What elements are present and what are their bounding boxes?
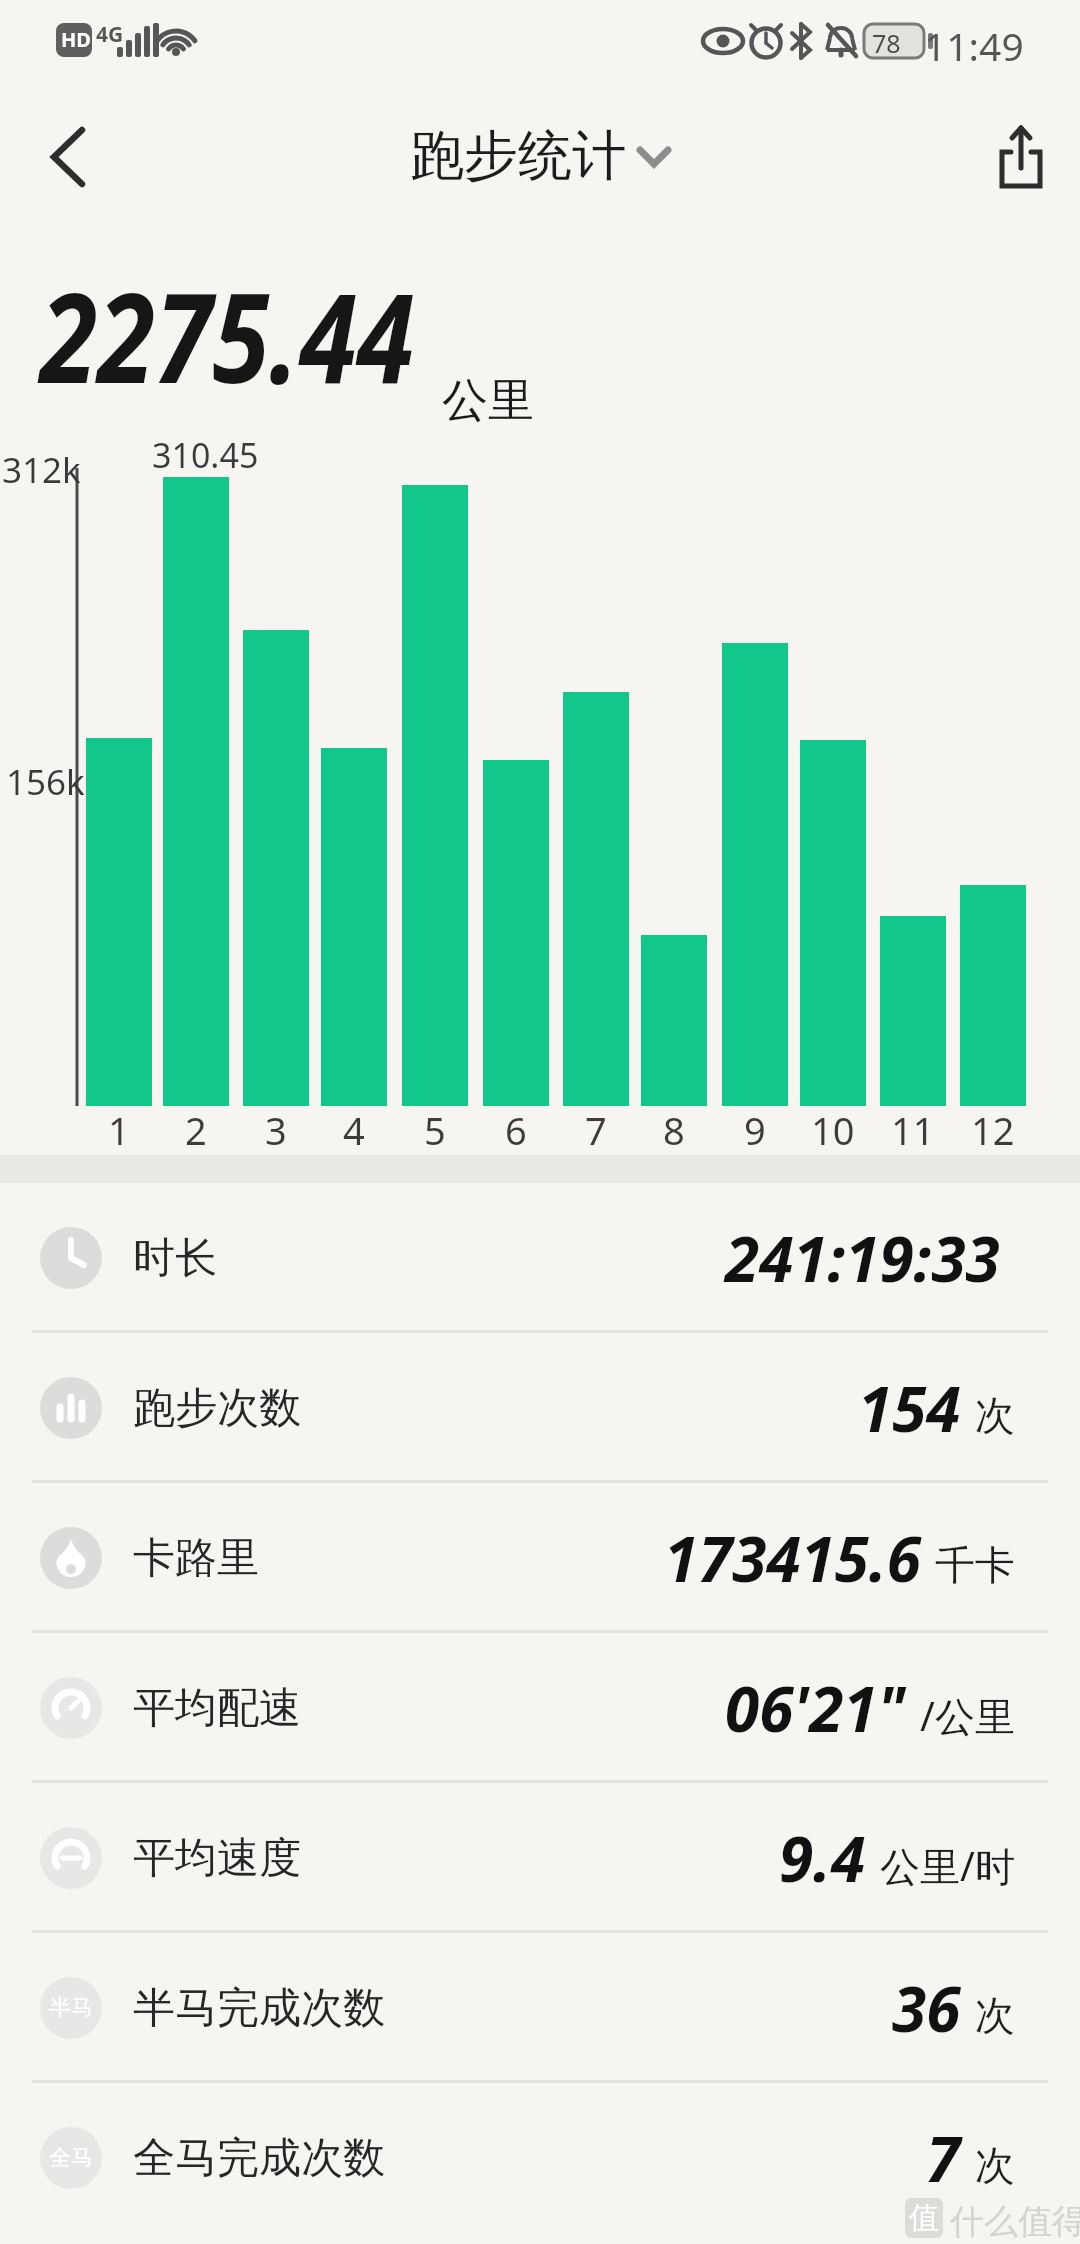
staticText: 8	[663, 1104, 685, 1156]
button[interactable]: 卡路里	[0, 1483, 1080, 1633]
button[interactable]: 跑步次数	[0, 1333, 1080, 1483]
staticText: 公里/时	[880, 1838, 1015, 1893]
staticText: /公里	[920, 1688, 1015, 1743]
staticText: 9.4	[779, 1816, 866, 1900]
staticText: 7	[585, 1104, 607, 1156]
staticText: 跑步统计	[410, 122, 626, 190]
staticText: 平均速度	[133, 1832, 301, 1885]
staticText: 11	[891, 1104, 935, 1156]
staticText: 平均配速	[133, 1682, 301, 1735]
staticText: 什么值得买	[950, 2200, 1080, 2243]
staticText: 36	[892, 1966, 961, 2050]
staticText: 公里	[442, 372, 534, 430]
staticText: 4G	[96, 20, 124, 49]
staticText: 6	[505, 1104, 527, 1156]
staticText: 跑步次数	[133, 1382, 301, 1435]
staticText: 次	[975, 2140, 1015, 2190]
staticText: 156k	[6, 758, 85, 806]
staticText: 半马	[49, 1994, 93, 2022]
staticText: 310.45	[152, 432, 259, 478]
staticText: 10	[811, 1104, 855, 1156]
staticText: 5	[424, 1104, 446, 1156]
button[interactable]: 半马	[0, 1933, 1080, 2083]
staticText: 312k	[2, 446, 81, 494]
staticText: 4	[343, 1104, 365, 1156]
button[interactable]: 平均配速	[0, 1633, 1080, 1783]
button[interactable]: 平均速度	[0, 1783, 1080, 1933]
staticText: 7	[926, 2116, 961, 2200]
staticText: 千卡	[935, 1540, 1015, 1590]
staticText: 11:49	[924, 19, 1024, 72]
staticText: 次	[975, 1390, 1015, 1440]
staticText: 2	[185, 1104, 207, 1156]
staticText: 次	[975, 1990, 1015, 2040]
staticText: 1	[108, 1104, 130, 1156]
button[interactable]: 全马	[0, 2083, 1080, 2233]
staticText: 78	[872, 26, 901, 60]
staticText: 12	[971, 1104, 1015, 1156]
staticText: HD	[61, 26, 91, 53]
staticText: 2275.44	[40, 250, 415, 419]
staticText: 06'21"	[725, 1666, 906, 1750]
button[interactable]: 时长	[0, 1183, 1080, 1333]
staticText: 卡路里	[133, 1532, 259, 1585]
button[interactable]	[28, 112, 104, 198]
staticText: 半马完成次数	[133, 1982, 385, 2035]
button[interactable]: 跑步统计	[0, 118, 1080, 194]
staticText: 全马	[49, 2144, 93, 2172]
staticText: 时长	[133, 1232, 217, 1285]
staticText: 全马完成次数	[133, 2132, 385, 2185]
button[interactable]	[984, 112, 1060, 198]
staticText: 154	[858, 1366, 961, 1450]
staticText: 9	[744, 1104, 766, 1156]
staticText: 241:19:33	[725, 1216, 1000, 1300]
staticText: 值	[909, 2199, 939, 2237]
staticText: 3	[265, 1104, 287, 1156]
staticText: 173415.6	[664, 1516, 921, 1600]
